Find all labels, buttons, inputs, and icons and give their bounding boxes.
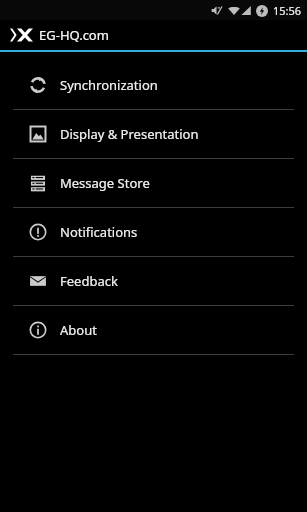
button[interactable]: Notifications	[0, 208, 307, 256]
staticText: Message Store	[60, 174, 150, 192]
staticText: 15:56	[273, 3, 302, 18]
staticText: Display & Presentation	[60, 125, 199, 143]
staticText: Notifications	[60, 223, 138, 241]
button[interactable]: App logo, navigate up	[0, 20, 307, 50]
other: App logo, navigate up	[10, 28, 33, 42]
staticText: Synchronization	[60, 76, 158, 94]
staticText: EG-HQ.com	[39, 26, 109, 44]
button[interactable]: Synchronization	[0, 61, 307, 109]
button[interactable]: About	[0, 306, 307, 354]
button[interactable]: Feedback	[0, 257, 307, 305]
button[interactable]: Display & Presentation	[0, 110, 307, 158]
staticText: About	[60, 321, 97, 339]
staticText: Feedback	[60, 272, 118, 290]
button[interactable]: Message Store	[0, 159, 307, 207]
